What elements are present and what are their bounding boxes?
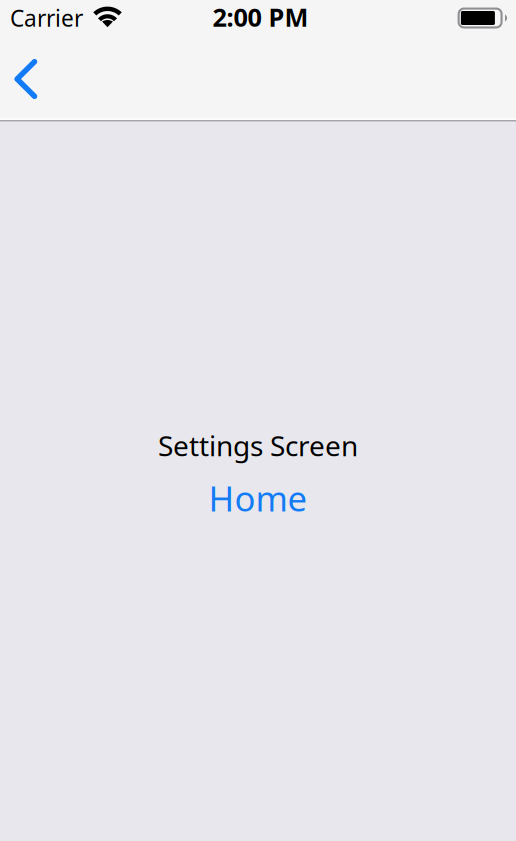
staticText: 2:00 PM: [212, 0, 308, 34]
staticText: Home: [208, 475, 307, 521]
staticText: Settings Screen: [158, 427, 358, 464]
staticText: Carrier: [10, 3, 83, 33]
button[interactable]: Back: [2, 55, 50, 107]
button[interactable]: Home: [208, 475, 307, 521]
